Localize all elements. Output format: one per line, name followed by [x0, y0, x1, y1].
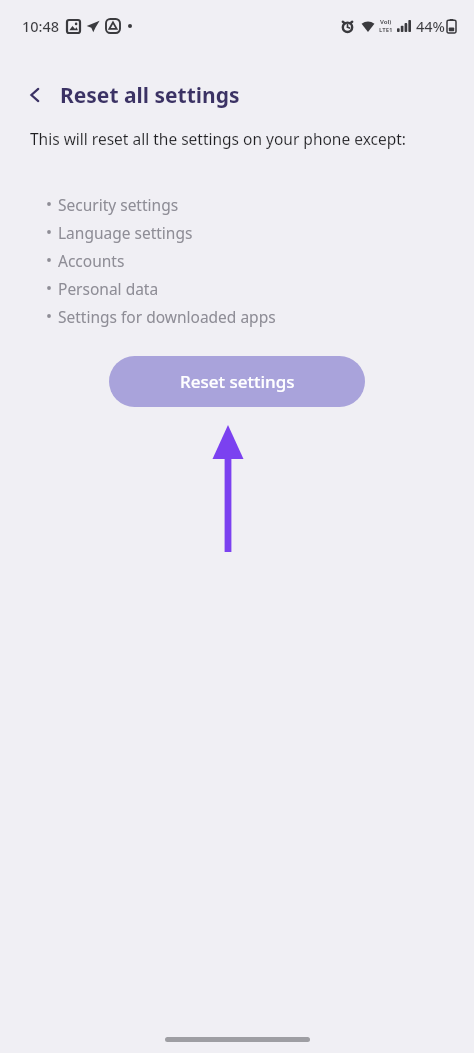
button[interactable]: Back	[18, 78, 52, 112]
button[interactable]: Reset settings	[109, 356, 365, 407]
staticText: Reset settings	[180, 370, 295, 393]
staticText: Accounts	[58, 250, 125, 271]
staticText: Personal data	[58, 278, 159, 299]
staticText: Settings for downloaded apps	[58, 306, 276, 327]
staticText: Reset all settings	[60, 81, 240, 110]
staticText: 44%	[416, 16, 445, 36]
staticText: This will reset all the settings on your…	[30, 128, 406, 149]
staticText: LTE1	[379, 26, 393, 34]
staticText: 10:48	[22, 16, 60, 36]
staticText: Security settings	[58, 194, 179, 215]
staticText: Vol)	[380, 18, 392, 26]
staticText: Language settings	[58, 222, 193, 243]
